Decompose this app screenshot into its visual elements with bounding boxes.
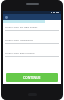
button[interactable]: Menu bbox=[5, 16, 8, 19]
staticText: What is your date of birth? bbox=[5, 51, 35, 54]
button[interactable]: What is your Nationality? bbox=[3, 37, 61, 50]
staticText: What is your Nationality? bbox=[5, 38, 33, 41]
button[interactable]: CONTINUE bbox=[6, 73, 58, 82]
button[interactable]: What is your full legal name? bbox=[3, 24, 61, 37]
staticText: CONTINUE bbox=[23, 75, 41, 80]
staticText: What is your full legal name? bbox=[5, 25, 38, 28]
button[interactable]: What is your date of birth? bbox=[3, 50, 61, 63]
